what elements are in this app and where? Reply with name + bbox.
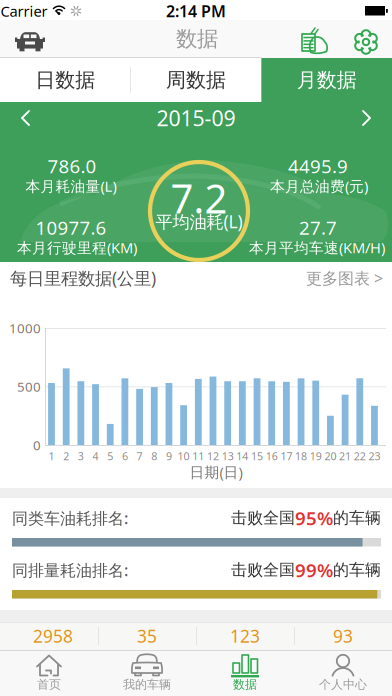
button[interactable] — [18, 106, 34, 130]
staticText: 每日里程数据(公里) — [10, 266, 156, 289]
staticText: 日数据 — [35, 68, 95, 92]
staticText: 本月总油费(元) — [270, 176, 368, 196]
staticText: 2015-09 — [156, 104, 235, 132]
staticText: 23 — [368, 449, 380, 463]
staticText: Carrier — [0, 1, 47, 21]
button[interactable]: 35 — [99, 622, 195, 650]
staticText: 15 — [251, 449, 263, 463]
staticText: 本月行驶里程(KM) — [17, 238, 137, 257]
button[interactable]: 首页 — [0, 650, 98, 696]
staticText: 周数据 — [166, 68, 226, 92]
staticText: 的车辆 — [333, 560, 381, 580]
staticText: 27.7 — [299, 215, 337, 240]
button[interactable]: 93 — [295, 622, 391, 650]
staticText: 的车辆 — [333, 508, 381, 528]
staticText: 9 — [166, 449, 172, 463]
staticText: 1000 — [9, 319, 41, 337]
staticText: 13 — [222, 449, 234, 463]
staticText: 8 — [151, 449, 157, 463]
button[interactable] — [15, 29, 45, 53]
staticText: 11 — [192, 449, 204, 463]
staticText: 同排量耗油排名: — [12, 559, 128, 581]
staticText: 12 — [207, 449, 219, 463]
button[interactable]: 个人中心 — [294, 650, 392, 696]
staticText: 10 — [178, 449, 190, 463]
staticText: 14 — [236, 449, 248, 463]
staticText: 123 — [230, 624, 260, 647]
button[interactable]: 我的车辆 — [98, 650, 196, 696]
staticText: 786.0 — [47, 154, 96, 178]
staticText: 500 — [17, 378, 41, 395]
staticText: 22 — [354, 449, 366, 463]
staticText: 日期(日) — [189, 462, 242, 482]
button[interactable]: 日数据 — [0, 58, 130, 102]
staticText: 0 — [33, 436, 41, 454]
staticText: 7 — [137, 449, 143, 463]
button[interactable] — [358, 106, 374, 130]
staticText: 4495.9 — [288, 154, 348, 178]
staticText: 2:14 PM — [166, 0, 226, 22]
staticText: 35 — [137, 624, 157, 647]
staticText: 95% — [295, 506, 333, 530]
staticText: 19 — [310, 449, 322, 463]
staticText: 同类车油耗排名: — [12, 507, 128, 529]
staticText: 3 — [78, 449, 84, 463]
staticText: 18 — [295, 449, 307, 463]
staticText: 首页 — [37, 677, 61, 692]
staticText: 击败全国 — [231, 560, 295, 580]
staticText: 93 — [333, 624, 353, 647]
staticText: 平均油耗(L) — [155, 210, 242, 233]
staticText: 月数据 — [297, 68, 357, 92]
staticText: 击败全国 — [231, 508, 295, 528]
staticText: 16 — [266, 449, 278, 463]
staticText: 个人中心 — [319, 677, 367, 692]
staticText: 2 — [63, 449, 69, 463]
staticText: 本月平均车速(KM/H) — [249, 238, 385, 257]
button[interactable] — [352, 28, 380, 56]
button[interactable]: 2958 — [5, 622, 101, 650]
staticText: 17 — [280, 449, 292, 463]
staticText: 1 — [48, 449, 54, 463]
staticText: 7.2 — [170, 171, 227, 224]
staticText: 6 — [122, 449, 128, 463]
staticText: 更多图表 > — [306, 267, 383, 289]
button[interactable]: 数据 — [196, 650, 294, 696]
staticText: 我的车辆 — [123, 677, 171, 692]
staticText: 4 — [92, 449, 98, 463]
staticText: 21 — [339, 449, 351, 463]
button[interactable]: 123 — [197, 622, 293, 650]
staticText: 10977.6 — [35, 215, 106, 240]
staticText: 本月耗油量(L) — [25, 176, 116, 196]
staticText: 数据 — [176, 26, 218, 52]
staticText: 数据 — [233, 677, 257, 692]
staticText: 5 — [107, 449, 113, 463]
staticText: 20 — [324, 449, 336, 463]
staticText: 2958 — [33, 624, 73, 647]
button[interactable] — [298, 27, 328, 57]
button[interactable]: 周数据 — [131, 58, 261, 102]
button[interactable]: 更多图表 > — [263, 267, 383, 289]
button[interactable]: 月数据 — [261, 58, 392, 102]
staticText: 99% — [295, 558, 333, 582]
